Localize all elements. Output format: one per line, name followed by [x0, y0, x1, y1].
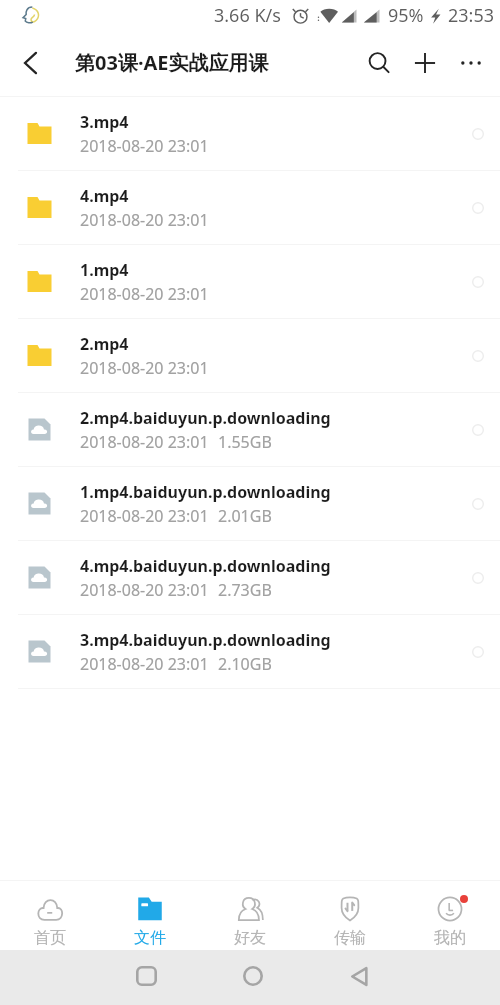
staticText: 4.mp4.baiduyun.p.downloading: [80, 555, 331, 577]
button[interactable]: Home: [233, 956, 273, 996]
staticText: 我的: [434, 928, 466, 948]
button[interactable]: 文件: [100, 881, 200, 950]
staticText: 2018-08-20 23:01: [80, 431, 209, 453]
staticText: 2.mp4: [80, 333, 129, 355]
staticText: 2018-08-20 23:01: [80, 579, 209, 601]
staticText: 2018-08-20 23:01: [80, 209, 209, 231]
staticText: 1.mp4: [80, 259, 129, 281]
button[interactable]: Search: [356, 40, 402, 86]
staticText: 2.mp4.baiduyun.p.downloading: [80, 407, 331, 429]
button[interactable]: 3.mp4: [0, 97, 500, 171]
staticText: 文件: [134, 928, 166, 948]
staticText: 4.mp4: [80, 185, 129, 207]
staticText: 3.66 K/s: [214, 3, 281, 28]
staticText: 2018-08-20 23:01: [80, 653, 209, 675]
button[interactable]: 2.mp4: [0, 319, 500, 393]
button[interactable]: Add: [402, 40, 448, 86]
button[interactable]: 4.mp4.baiduyun.p.downloading: [0, 541, 500, 615]
button[interactable]: 1.mp4: [0, 245, 500, 319]
button[interactable]: 我的: [400, 881, 500, 950]
staticText: 好友: [234, 928, 266, 948]
staticText: 2018-08-20 23:01: [80, 505, 209, 527]
staticText: 传输: [334, 928, 366, 948]
button[interactable]: 首页: [0, 881, 100, 950]
staticText: 2018-08-20 23:01: [80, 357, 209, 379]
button[interactable]: 3.mp4.baiduyun.p.downloading: [0, 615, 500, 689]
button[interactable]: More options: [448, 40, 494, 86]
staticText: 2.10GB: [218, 653, 272, 675]
button[interactable]: 传输: [300, 881, 400, 950]
staticText: 1.mp4.baiduyun.p.downloading: [80, 481, 331, 503]
button[interactable]: 1.mp4.baiduyun.p.downloading: [0, 467, 500, 541]
button[interactable]: Recents: [126, 956, 166, 996]
button[interactable]: 好友: [200, 881, 300, 950]
button[interactable]: Back: [6, 39, 54, 87]
staticText: 3.mp4: [80, 111, 129, 133]
staticText: 3.mp4.baiduyun.p.downloading: [80, 629, 331, 651]
staticText: 2.73GB: [218, 579, 272, 601]
staticText: 2018-08-20 23:01: [80, 283, 209, 305]
staticText: 首页: [34, 928, 66, 948]
staticText: 95%: [388, 3, 424, 28]
button[interactable]: 4.mp4: [0, 171, 500, 245]
button[interactable]: 2.mp4.baiduyun.p.downloading: [0, 393, 500, 467]
staticText: 23:53: [448, 3, 495, 28]
staticText: 2018-08-20 23:01: [80, 135, 209, 157]
staticText: 1.55GB: [218, 431, 272, 453]
button[interactable]: Back: [339, 956, 379, 996]
staticText: 第03课·AE实战应用课: [75, 49, 269, 76]
staticText: 2.01GB: [218, 505, 272, 527]
